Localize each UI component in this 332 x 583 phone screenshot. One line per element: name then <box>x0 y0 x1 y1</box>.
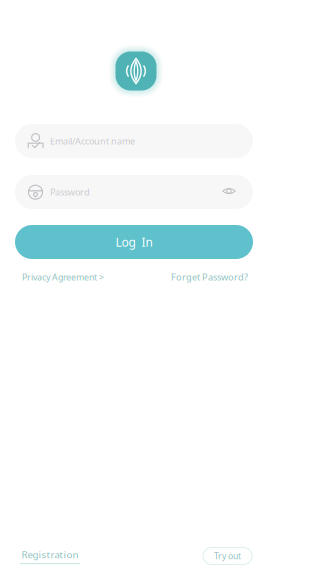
staticText: Privacy Agreement > <box>22 271 104 283</box>
button[interactable]: Registration <box>20 548 80 564</box>
button[interactable]: Try out <box>203 547 252 564</box>
staticText: Log In <box>115 234 152 250</box>
button[interactable]: Privacy Agreement > <box>22 271 104 283</box>
button[interactable]: Log In <box>15 225 253 259</box>
staticText: Registration <box>21 548 78 561</box>
staticText: Email/Account name <box>50 135 135 147</box>
button[interactable]: Forget Password? <box>171 271 248 283</box>
staticText: Password <box>50 186 90 198</box>
button[interactable]: Show password <box>218 180 240 204</box>
staticText: Forget Password? <box>171 271 248 283</box>
staticText: Try out <box>214 550 241 562</box>
